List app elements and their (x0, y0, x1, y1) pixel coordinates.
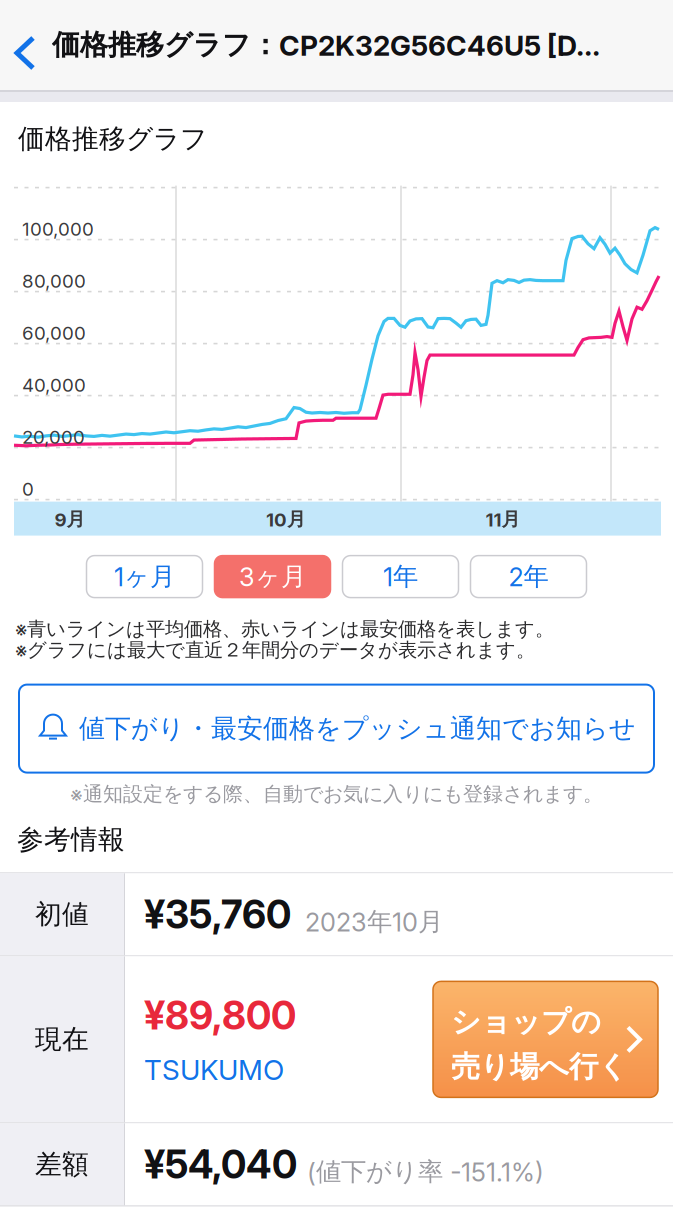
button[interactable]: Back (0, 0, 52, 90)
staticText: ※通知設定をする際、自動でお気に入りにも登録されます。 (70, 782, 603, 807)
staticText: 価格推移グラフ：CP2K32G56C46U5 [D... (52, 27, 600, 63)
staticText: ¥35,760 (144, 891, 291, 938)
staticText: ¥89,800 (144, 992, 296, 1039)
staticText: 11月 (485, 508, 520, 531)
staticText: ※青いラインは平均価格、赤いラインは最安価格を表します。 (15, 617, 554, 641)
staticText: 2023年10月 (305, 906, 443, 938)
button[interactable]: 値下がり・最安価格をプッシュ通知でお知らせ (0, 661, 673, 773)
staticText: 9月 (54, 508, 85, 531)
staticText: 差額 (35, 1148, 89, 1181)
staticText: ※グラフには最大で直近２年間分のデータが表示されます。 (15, 638, 535, 662)
staticText: 10月 (266, 508, 306, 531)
staticText: 60,000 (22, 322, 86, 344)
button[interactable]: 2年 (470, 556, 586, 598)
staticText: 1年 (383, 561, 418, 592)
staticText: ¥54,040 (144, 1141, 297, 1188)
staticText: 値下がり・最安価格をプッシュ通知でお知らせ (79, 712, 636, 745)
staticText: ショップの (451, 1003, 601, 1040)
staticText: 売り場へ行く (451, 1048, 628, 1085)
button[interactable]: ショップの (433, 981, 673, 1097)
staticText: 1ヶ月 (114, 561, 175, 592)
staticText: 0 (22, 478, 34, 500)
staticText: 価格推移グラフ (18, 122, 207, 156)
staticText: 参考情報 (17, 823, 125, 856)
staticText: 20,000 (22, 426, 85, 448)
staticText: 2年 (508, 561, 548, 592)
button[interactable]: 1年 (342, 556, 458, 598)
staticText: 100,000 (22, 218, 94, 240)
staticText: 初値 (35, 898, 89, 931)
staticText: (値下がり率 -151.1%) (307, 1156, 544, 1188)
staticText: 40,000 (22, 374, 86, 396)
staticText: TSUKUMO (144, 1053, 284, 1087)
button[interactable]: 1ヶ月 (86, 556, 202, 598)
staticText: 3ヶ月 (239, 561, 306, 592)
staticText: 80,000 (22, 270, 86, 292)
staticText: 現在 (35, 1023, 89, 1056)
button[interactable]: 3ヶ月 (214, 556, 330, 598)
